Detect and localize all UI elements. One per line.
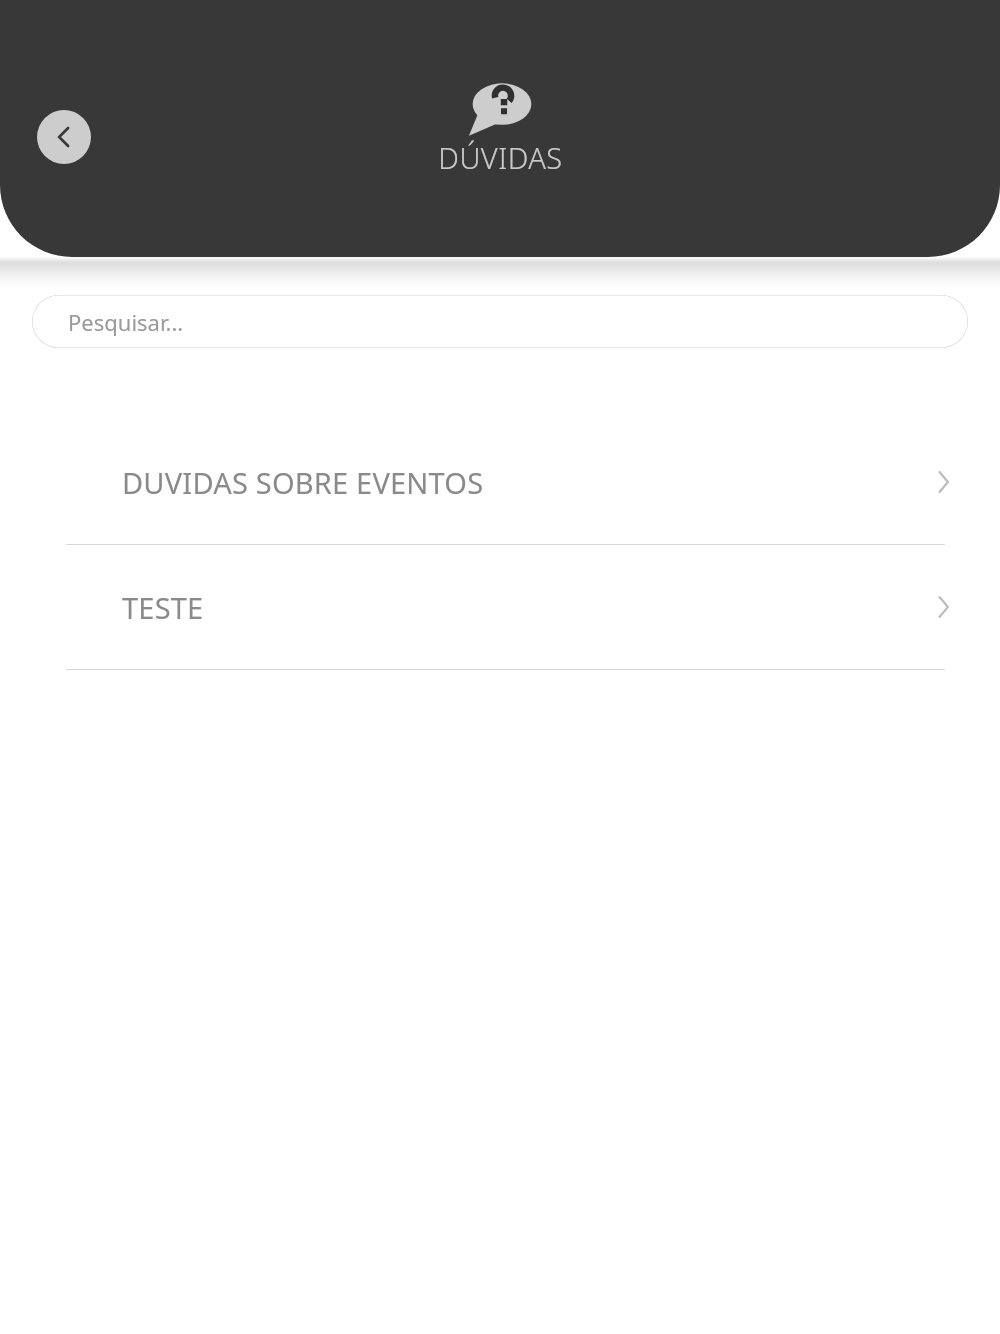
staticText: TESTE	[122, 588, 930, 627]
button[interactable]: DUVIDAS SOBRE EVENTOS	[0, 420, 1000, 545]
button[interactable]: Voltar	[37, 110, 91, 164]
button[interactable]: TESTE	[0, 545, 1000, 670]
staticText: Pesquisar...	[68, 307, 184, 337]
button[interactable]: Pesquisar...	[32, 295, 968, 348]
staticText: DÚVIDAS	[438, 138, 563, 177]
staticText: DUVIDAS SOBRE EVENTOS	[122, 463, 930, 502]
